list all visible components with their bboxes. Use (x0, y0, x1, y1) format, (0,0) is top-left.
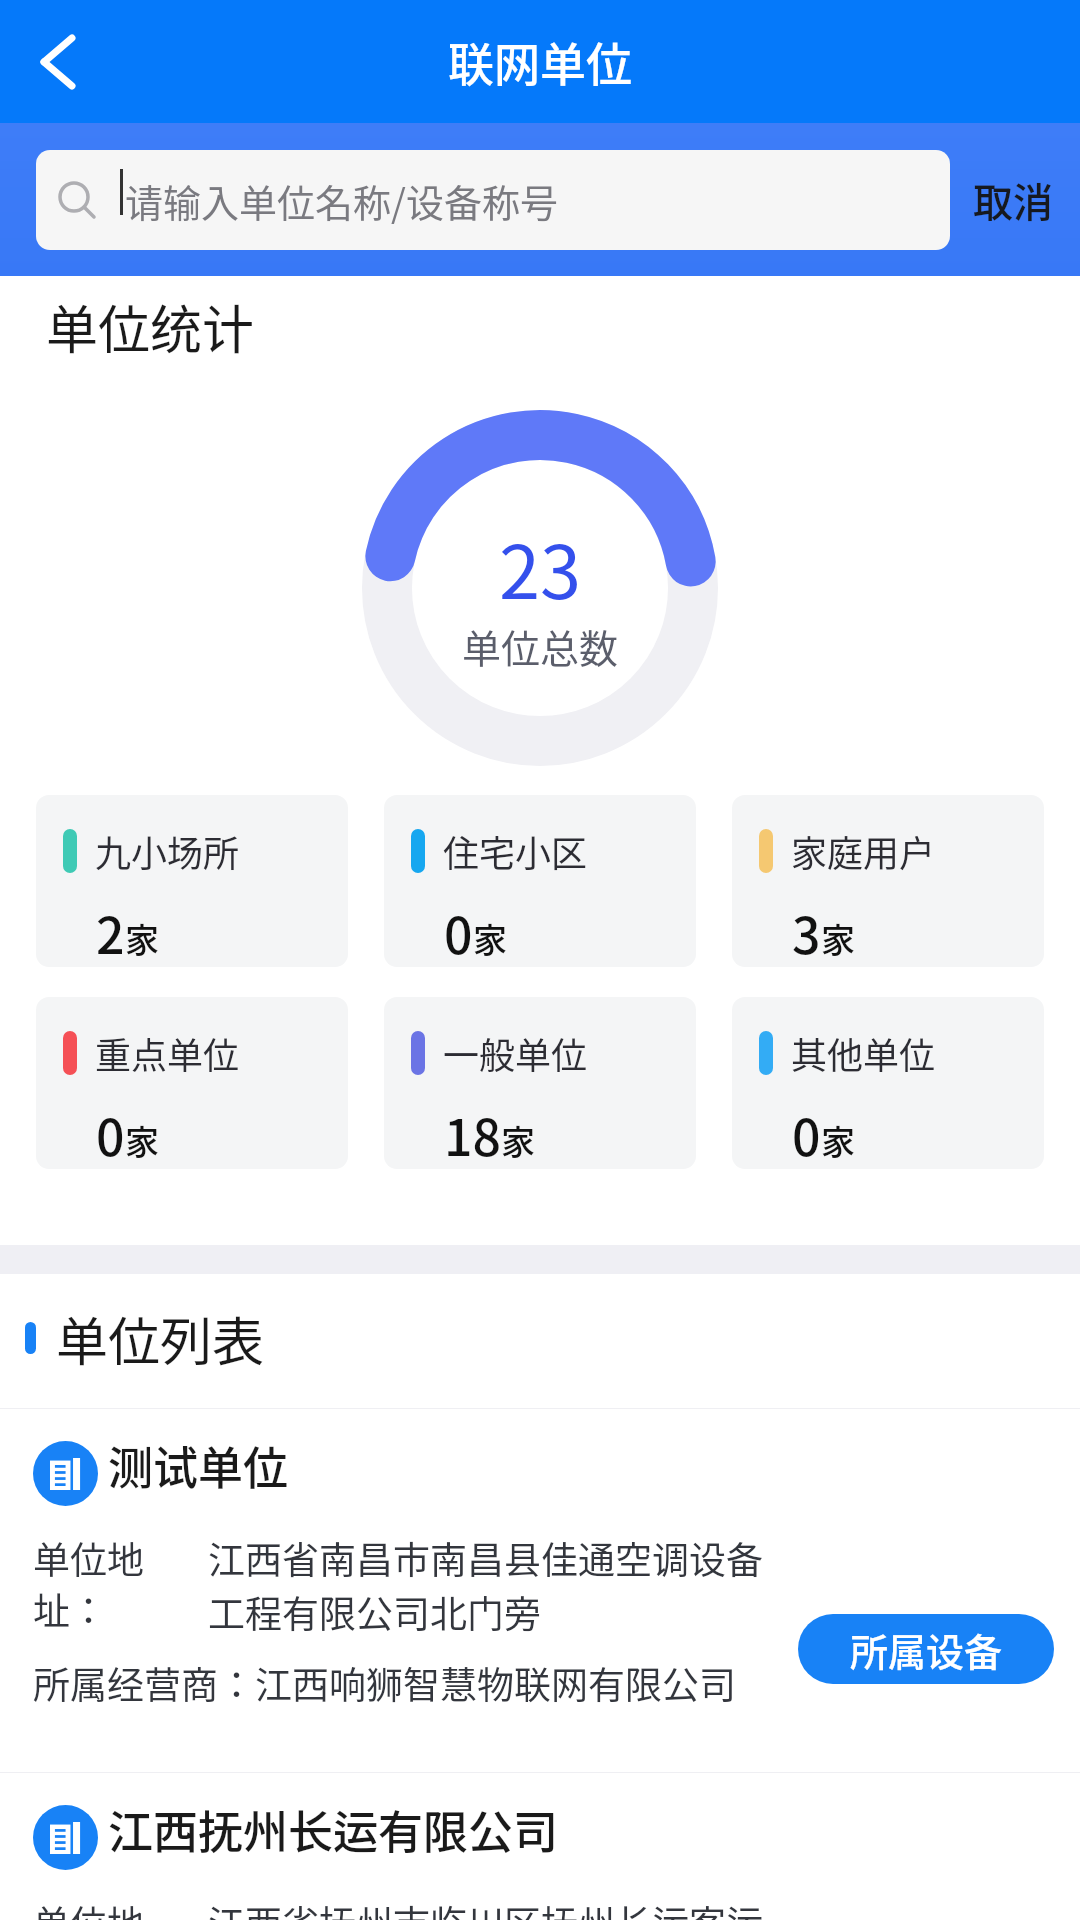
button[interactable]: Back (8, 14, 104, 110)
staticText: 家 (821, 914, 855, 963)
staticText: 江西省抚州市临川区抚州长运客运 (208, 1895, 763, 1920)
staticText: 单位总数 (462, 618, 619, 674)
staticText: 0 (444, 896, 473, 967)
button[interactable]: 江西抚州长运有限公司 (0, 1773, 1080, 1920)
button[interactable]: 家庭用户 (732, 795, 1044, 967)
button[interactable]: 请输入单位名称/设备称号 (36, 150, 950, 250)
staticText: 所属设备 (850, 1622, 1003, 1677)
staticText: 家 (125, 914, 159, 963)
staticText: 住宅小区 (443, 825, 588, 877)
staticText: 工程有限公司北门旁 (208, 1585, 541, 1639)
staticText: 重点单位 (95, 1027, 240, 1079)
staticText: 请输入单位名称/设备称号 (125, 173, 558, 228)
button[interactable]: 其他单位 (732, 997, 1044, 1169)
staticText: 家 (125, 1116, 159, 1165)
staticText: 0 (96, 1098, 125, 1169)
staticText: 2 (96, 896, 125, 967)
staticText: 九小场所 (95, 825, 240, 877)
staticText: 江西抚州长运有限公司 (108, 1797, 559, 1862)
staticText: 23 (499, 513, 582, 620)
button[interactable]: 九小场所 (36, 795, 348, 967)
button[interactable]: 一般单位 (384, 997, 696, 1169)
staticText: 测试单位 (108, 1433, 289, 1498)
staticText: 0 (792, 1098, 821, 1169)
staticText: 18 (444, 1098, 501, 1169)
staticText: 单位地 址： (33, 1531, 144, 1636)
staticText: 取消 (973, 171, 1053, 229)
button[interactable]: 测试单位 (0, 1409, 1080, 1772)
staticText: 江西省南昌市南昌县佳通空调设备 (208, 1531, 763, 1585)
staticText: 所属经营商：江西响狮智慧物联网有限公司 (33, 1656, 736, 1710)
button[interactable]: 重点单位 (36, 997, 348, 1169)
staticText: 家庭用户 (791, 825, 936, 877)
staticText: 联网单位 (448, 28, 632, 95)
button[interactable]: 住宅小区 (384, 795, 696, 967)
staticText: 其他单位 (791, 1027, 936, 1079)
staticText: 单位统计 (46, 289, 255, 364)
button[interactable]: 所属设备 (798, 1614, 1054, 1684)
staticText: 一般单位 (443, 1027, 588, 1079)
staticText: 家 (821, 1116, 855, 1165)
staticText: 家 (501, 1116, 535, 1165)
staticText: 家 (473, 914, 507, 963)
staticText: 3 (792, 896, 821, 967)
staticText: 单位地 址： (33, 1895, 144, 1920)
staticText: 单位列表 (56, 1301, 265, 1376)
button[interactable]: 取消 (950, 123, 1076, 276)
